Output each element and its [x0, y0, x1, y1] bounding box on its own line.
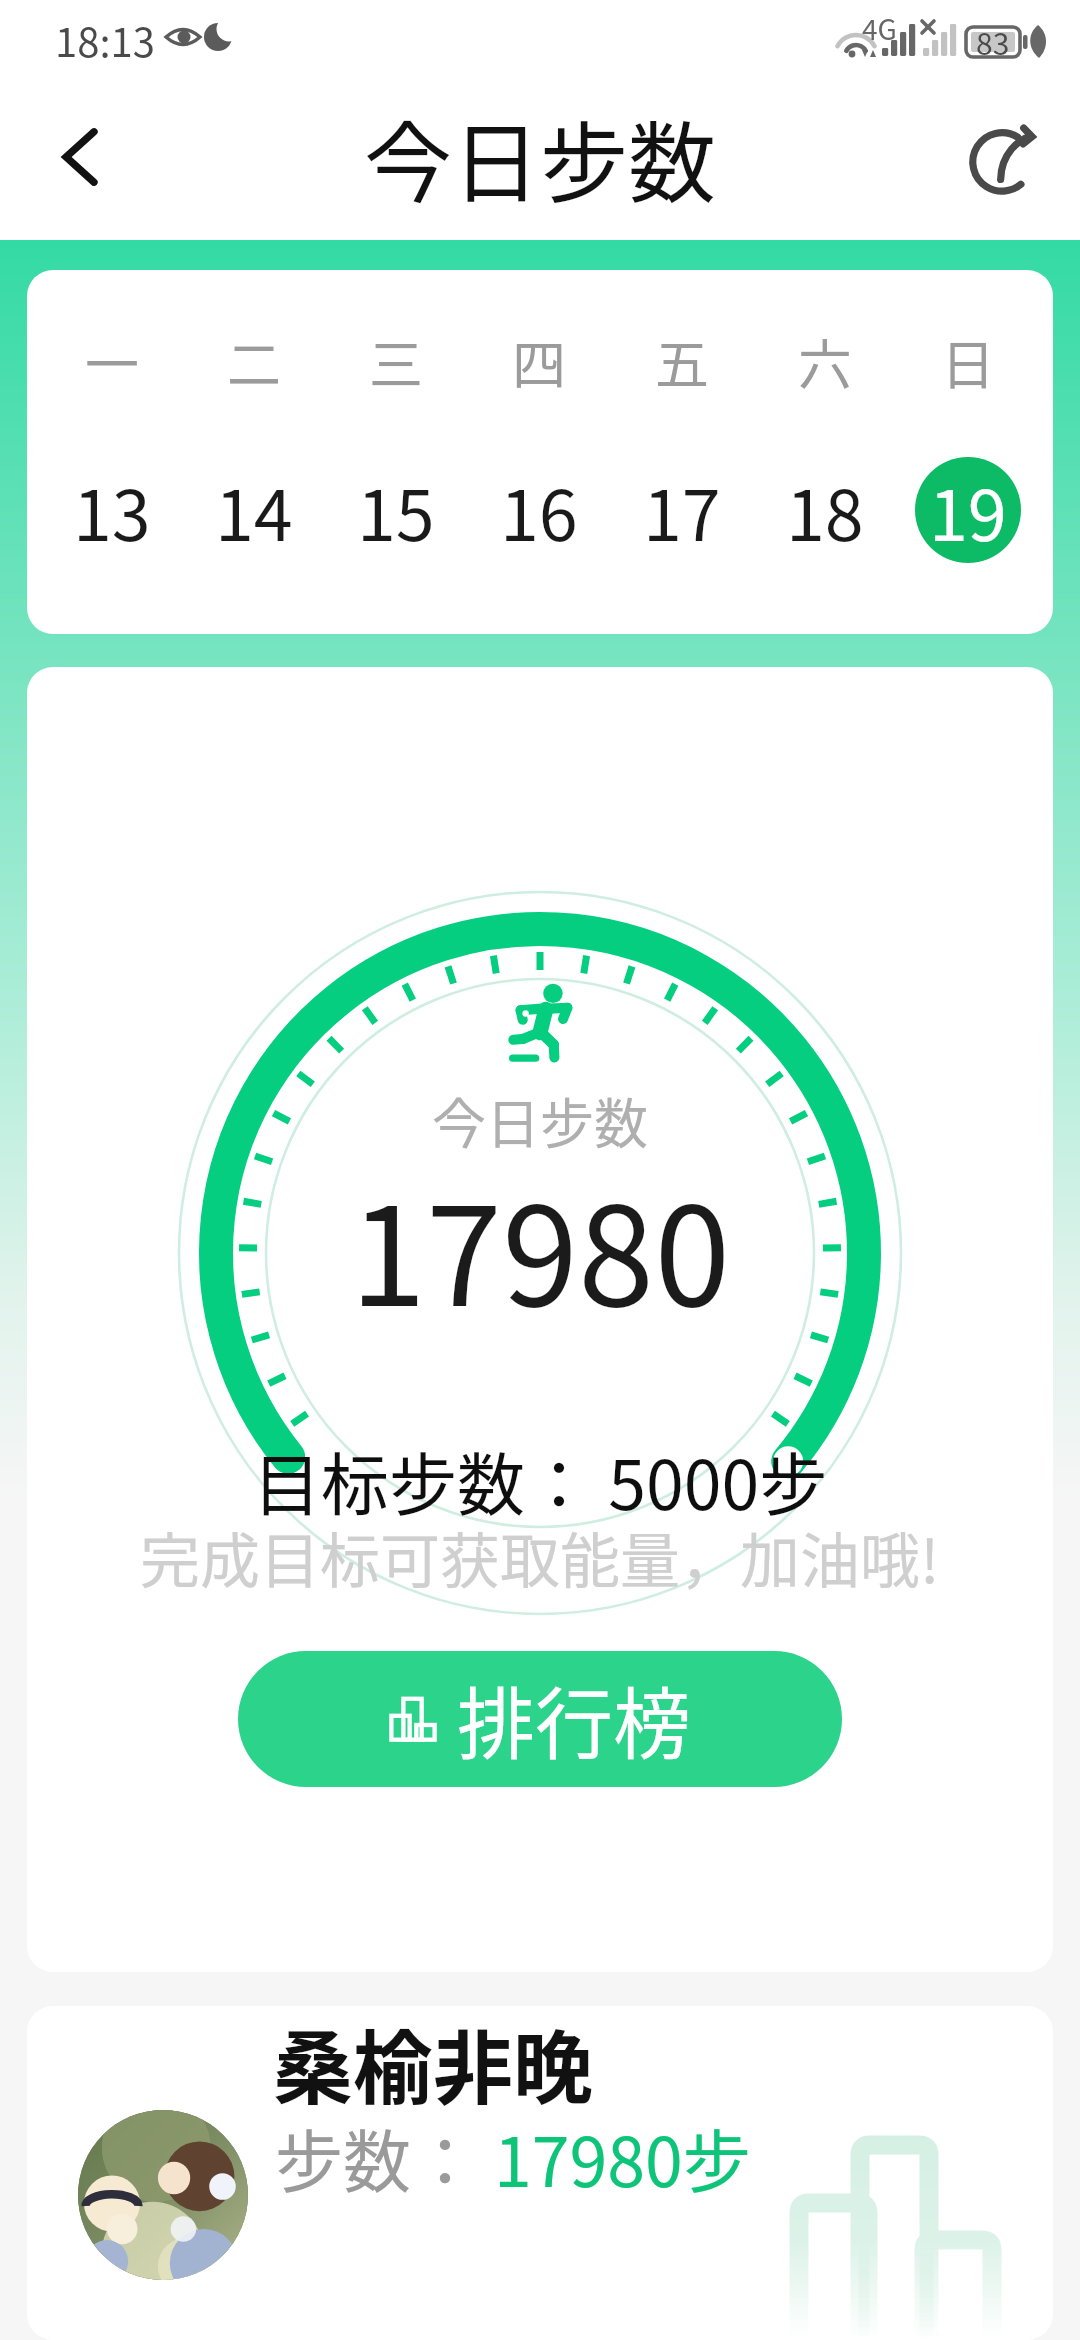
button[interactable]: 15 [343, 457, 449, 563]
staticText: 17 [643, 460, 721, 561]
button[interactable]: 16 [486, 457, 592, 563]
staticText: 83 [976, 20, 1010, 63]
button[interactable]: 13 [59, 457, 165, 563]
button[interactable]: 18 [772, 457, 878, 563]
staticText: 步数： [275, 2108, 480, 2206]
staticText: 17980 [350, 1147, 731, 1345]
staticText: 18 [786, 460, 864, 561]
staticText: 三 [369, 322, 423, 400]
button[interactable]: 14 [201, 457, 307, 563]
staticText: 五 [655, 322, 709, 400]
staticText: 17980步 [494, 2108, 751, 2206]
button[interactable]: 17 [629, 457, 735, 563]
staticText: 19 [929, 460, 1007, 561]
staticText: 日 [941, 322, 995, 400]
staticText: 13 [73, 460, 151, 561]
staticText: 六 [798, 322, 852, 400]
staticText: 16 [500, 460, 578, 561]
staticText: 今日步数 [364, 93, 717, 220]
staticText: 目标步数： 5000步 [253, 1431, 828, 1529]
staticText: 15 [357, 460, 435, 561]
staticText: 二 [227, 322, 281, 400]
staticText: 一 [85, 322, 139, 400]
staticText: 18:13 [55, 11, 155, 69]
button[interactable]: 排行榜 [238, 1651, 842, 1787]
button[interactable]: 19 [915, 457, 1021, 563]
staticText: 14 [215, 460, 293, 561]
button[interactable]: Share [956, 112, 1052, 208]
button[interactable]: 桑榆非晚 [27, 2006, 1053, 2340]
staticText: 完成目标可获取能量，加油哦! [140, 1513, 940, 1600]
staticText: 桑榆非晚 [273, 2006, 593, 2120]
staticText: 排行榜 [457, 1663, 692, 1776]
button[interactable]: Back [40, 112, 130, 202]
staticText: 四 [512, 322, 566, 400]
staticText: 4G [862, 8, 897, 49]
staticText: 今日步数 [432, 1081, 648, 1159]
